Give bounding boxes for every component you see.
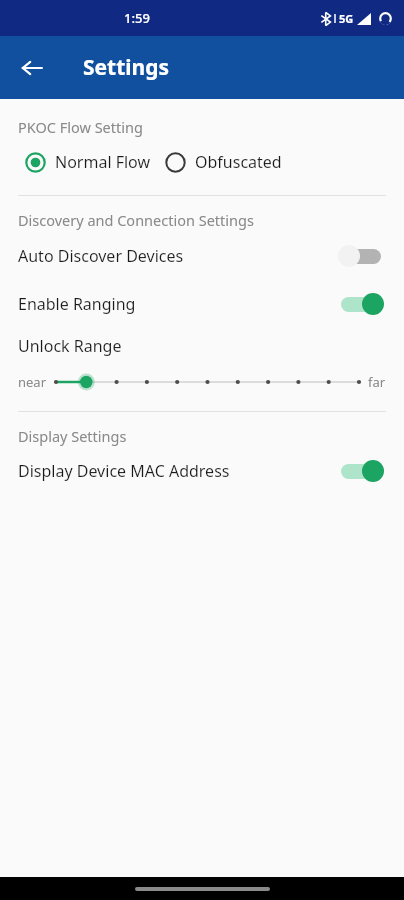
staticText: Unlock Range	[18, 335, 122, 357]
staticText: near	[18, 373, 47, 391]
staticText: Discovery and Connection Settings	[18, 210, 254, 230]
staticText: PKOC Flow Setting	[18, 117, 143, 137]
button[interactable]: Enable Ranging	[0, 287, 404, 321]
staticText: Obfuscated	[195, 151, 282, 173]
button[interactable]: Auto Discover Devices	[0, 239, 404, 273]
staticText: Enable Ranging	[18, 293, 338, 315]
button[interactable]: Unlock range slider	[56, 371, 359, 393]
button[interactable]: Normal Flow	[25, 151, 151, 173]
staticText: Display Device MAC Address	[18, 460, 338, 482]
staticText: Auto Discover Devices	[18, 245, 338, 267]
staticText: far	[368, 373, 386, 391]
staticText: Settings	[83, 53, 170, 82]
button[interactable]: Obfuscated	[165, 151, 282, 173]
staticText: Display Settings	[18, 426, 127, 446]
staticText: 1:59	[124, 9, 150, 27]
button[interactable]: Display Device MAC Address	[0, 454, 404, 488]
button[interactable]: Back	[10, 46, 54, 90]
staticText: 5G	[339, 11, 354, 26]
staticText: Normal Flow	[55, 151, 151, 173]
